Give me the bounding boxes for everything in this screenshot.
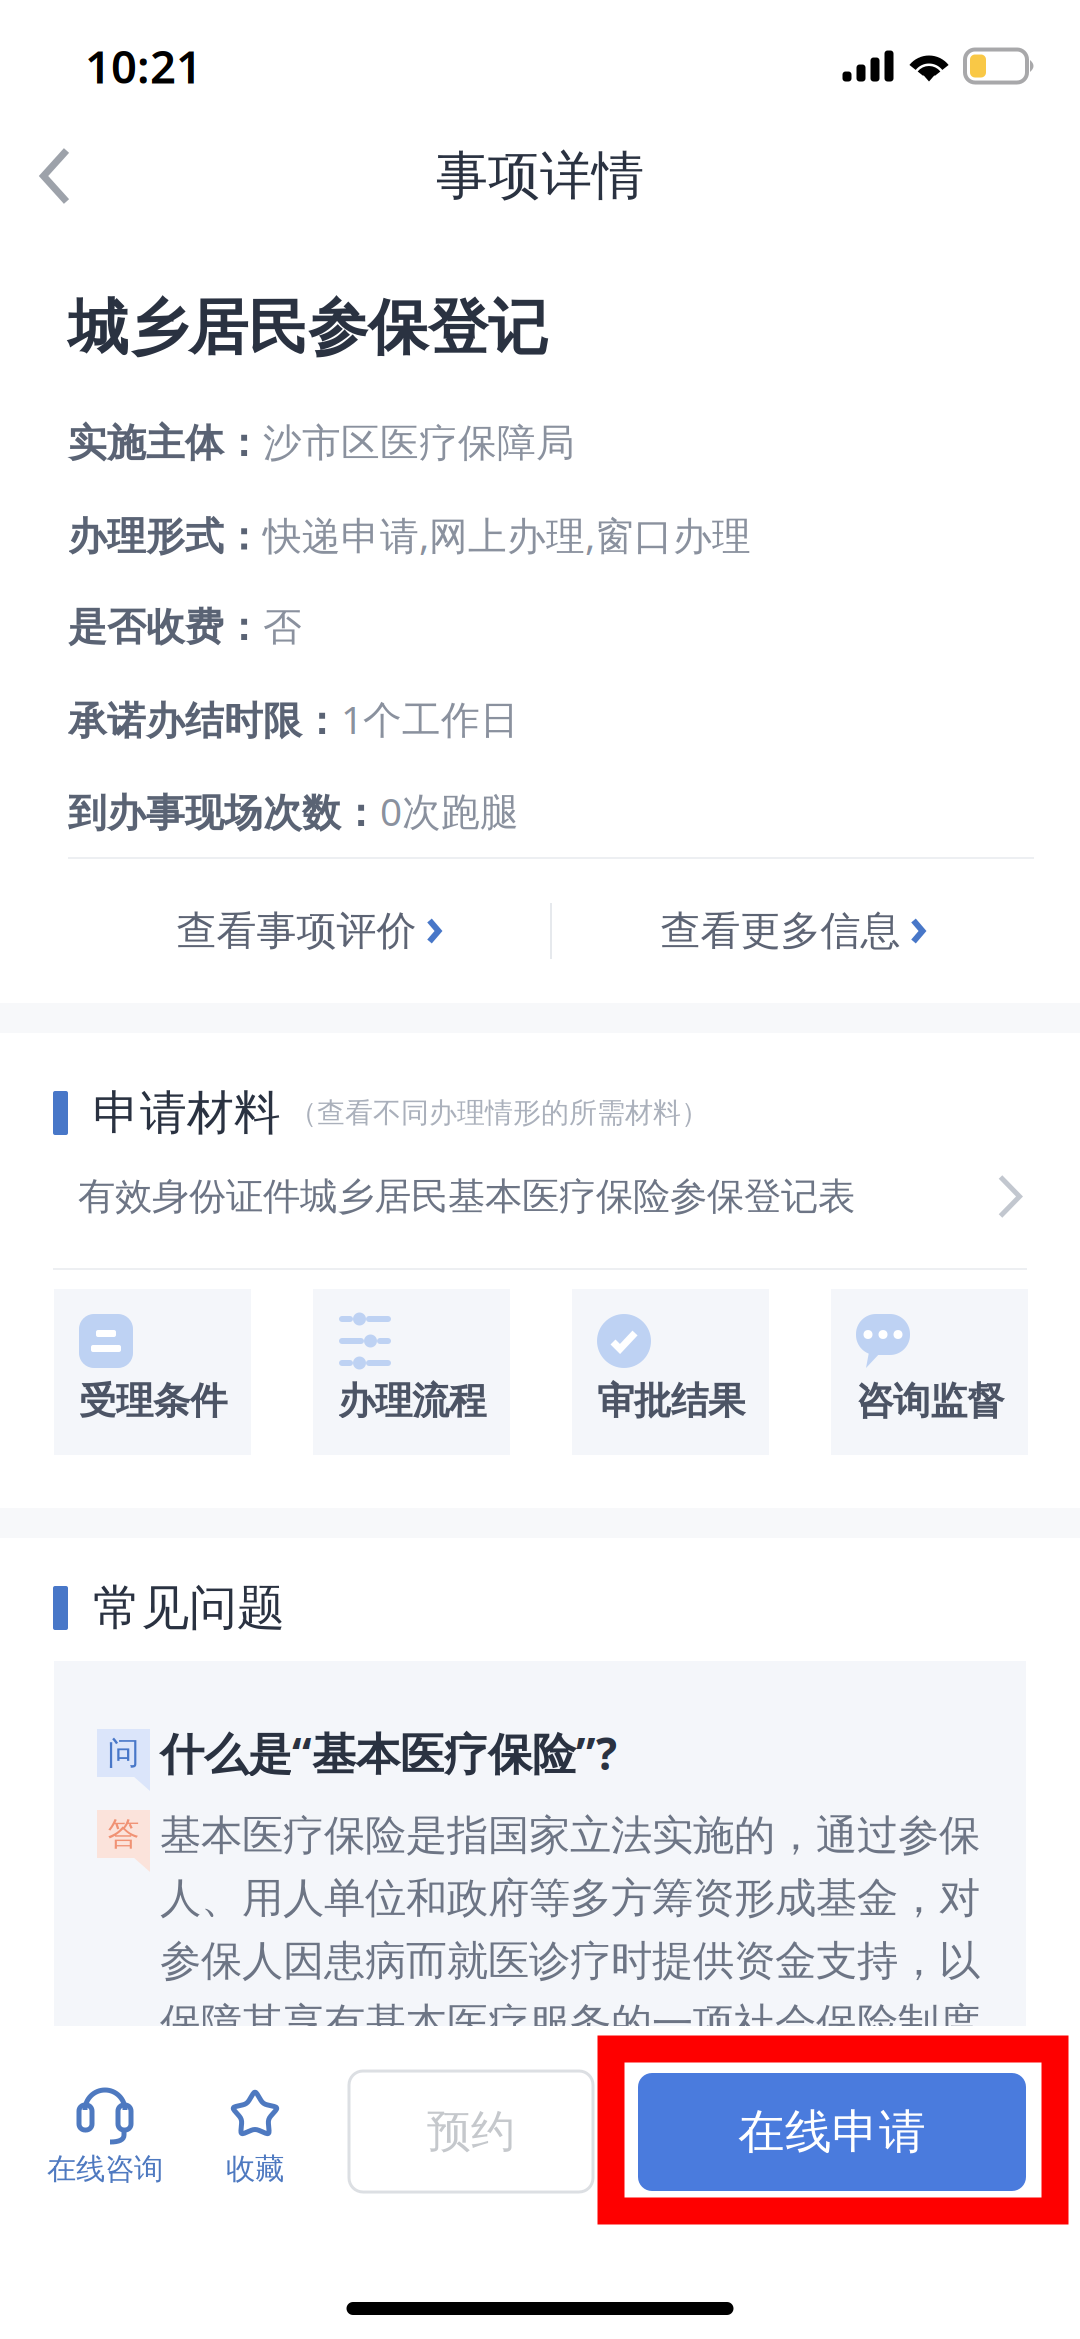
staticText: 实施主体： [68, 419, 263, 467]
button[interactable]: 有效身份证件城乡居民基本医疗保险参保登记表 [0, 1141, 1080, 1268]
staticText: 办理流程 [338, 1378, 486, 1424]
staticText: 什么是“基本医疗保险”? [160, 1724, 617, 1782]
staticText: 是否收费： [68, 603, 263, 651]
staticText: 问 [107, 1733, 139, 1773]
button[interactable]: 查看更多信息 [660, 881, 925, 981]
staticText: 预约 [427, 2104, 515, 2158]
button[interactable]: 在线咨询 [30, 2026, 180, 2339]
button[interactable]: 咨询监督 [831, 1289, 1028, 1455]
staticText: 在线咨询 [47, 2151, 163, 2187]
staticText: 查看事项评价 [176, 906, 416, 955]
staticText: 受理条件 [79, 1378, 227, 1424]
staticText: 快递申请,网上办理,窗口办理 [263, 509, 751, 561]
staticText: 基本医疗保险是指国家立法实施的，通过参保人、用人单位和政府等多方筹资形成基金，对… [160, 1810, 980, 2049]
button[interactable]: 查看事项评价 [176, 881, 441, 981]
staticText: 咨询监督 [856, 1378, 1004, 1424]
staticText: （查看不同办理情形的所需材料） [289, 1096, 709, 1130]
staticText: 10:21 [85, 36, 202, 96]
staticText: 城乡居民参保登记 [68, 291, 548, 365]
button[interactable]: 在线申请 [638, 2073, 1026, 2191]
staticText: 承诺办结时限： [68, 697, 341, 745]
button[interactable]: 受理条件 [54, 1289, 251, 1455]
button[interactable]: 办理流程 [313, 1289, 510, 1455]
staticText: 1个工作日 [341, 693, 519, 744]
button[interactable]: 预约 [349, 2071, 593, 2192]
staticText: 有效身份证件城乡居民基本医疗保险参保登记表 [78, 1174, 855, 1219]
staticText: 沙市区医疗保障局 [263, 419, 575, 467]
staticText: 查看更多信息 [660, 906, 900, 955]
button[interactable]: 收藏 [180, 2026, 330, 2339]
staticText: 事项详情 [436, 144, 644, 208]
staticText: 0次跑腿 [380, 785, 519, 836]
staticText: 申请材料 [93, 1084, 281, 1142]
staticText: 到办事现场次数： [68, 789, 380, 837]
staticText: 收藏 [226, 2151, 284, 2187]
staticText: 在线申请 [738, 2103, 926, 2161]
staticText: 办理形式： [68, 513, 263, 560]
button[interactable]: 审批结果 [572, 1289, 769, 1455]
staticText: 常见问题 [93, 1578, 285, 1637]
staticText: 审批结果 [597, 1378, 745, 1424]
staticText: 否 [263, 603, 302, 651]
staticText: 答 [107, 1814, 139, 1854]
button[interactable]: Back [0, 116, 110, 236]
